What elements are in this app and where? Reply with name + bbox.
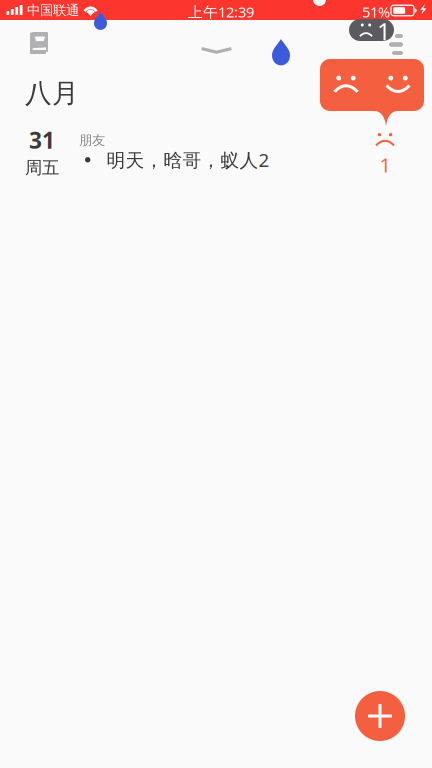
button[interactable]: Add event xyxy=(355,691,405,741)
staticText: 51% xyxy=(362,2,390,21)
staticText: 1 xyxy=(377,15,391,47)
staticText: 1 xyxy=(379,151,390,178)
button[interactable]: Diary xyxy=(18,20,60,66)
staticText: 明天，晗哥，蚁人2 xyxy=(106,147,269,172)
button[interactable]: Collapse calendar xyxy=(186,33,247,68)
staticText: 周五 xyxy=(25,157,59,178)
staticText: 31 xyxy=(29,125,55,155)
staticText: 中国联通 xyxy=(27,2,79,18)
staticText: 八月 xyxy=(25,77,79,110)
staticText: 上午12:39 xyxy=(188,2,254,21)
button[interactable]: Sort xyxy=(377,22,415,67)
staticText: 朋友 xyxy=(79,132,105,148)
